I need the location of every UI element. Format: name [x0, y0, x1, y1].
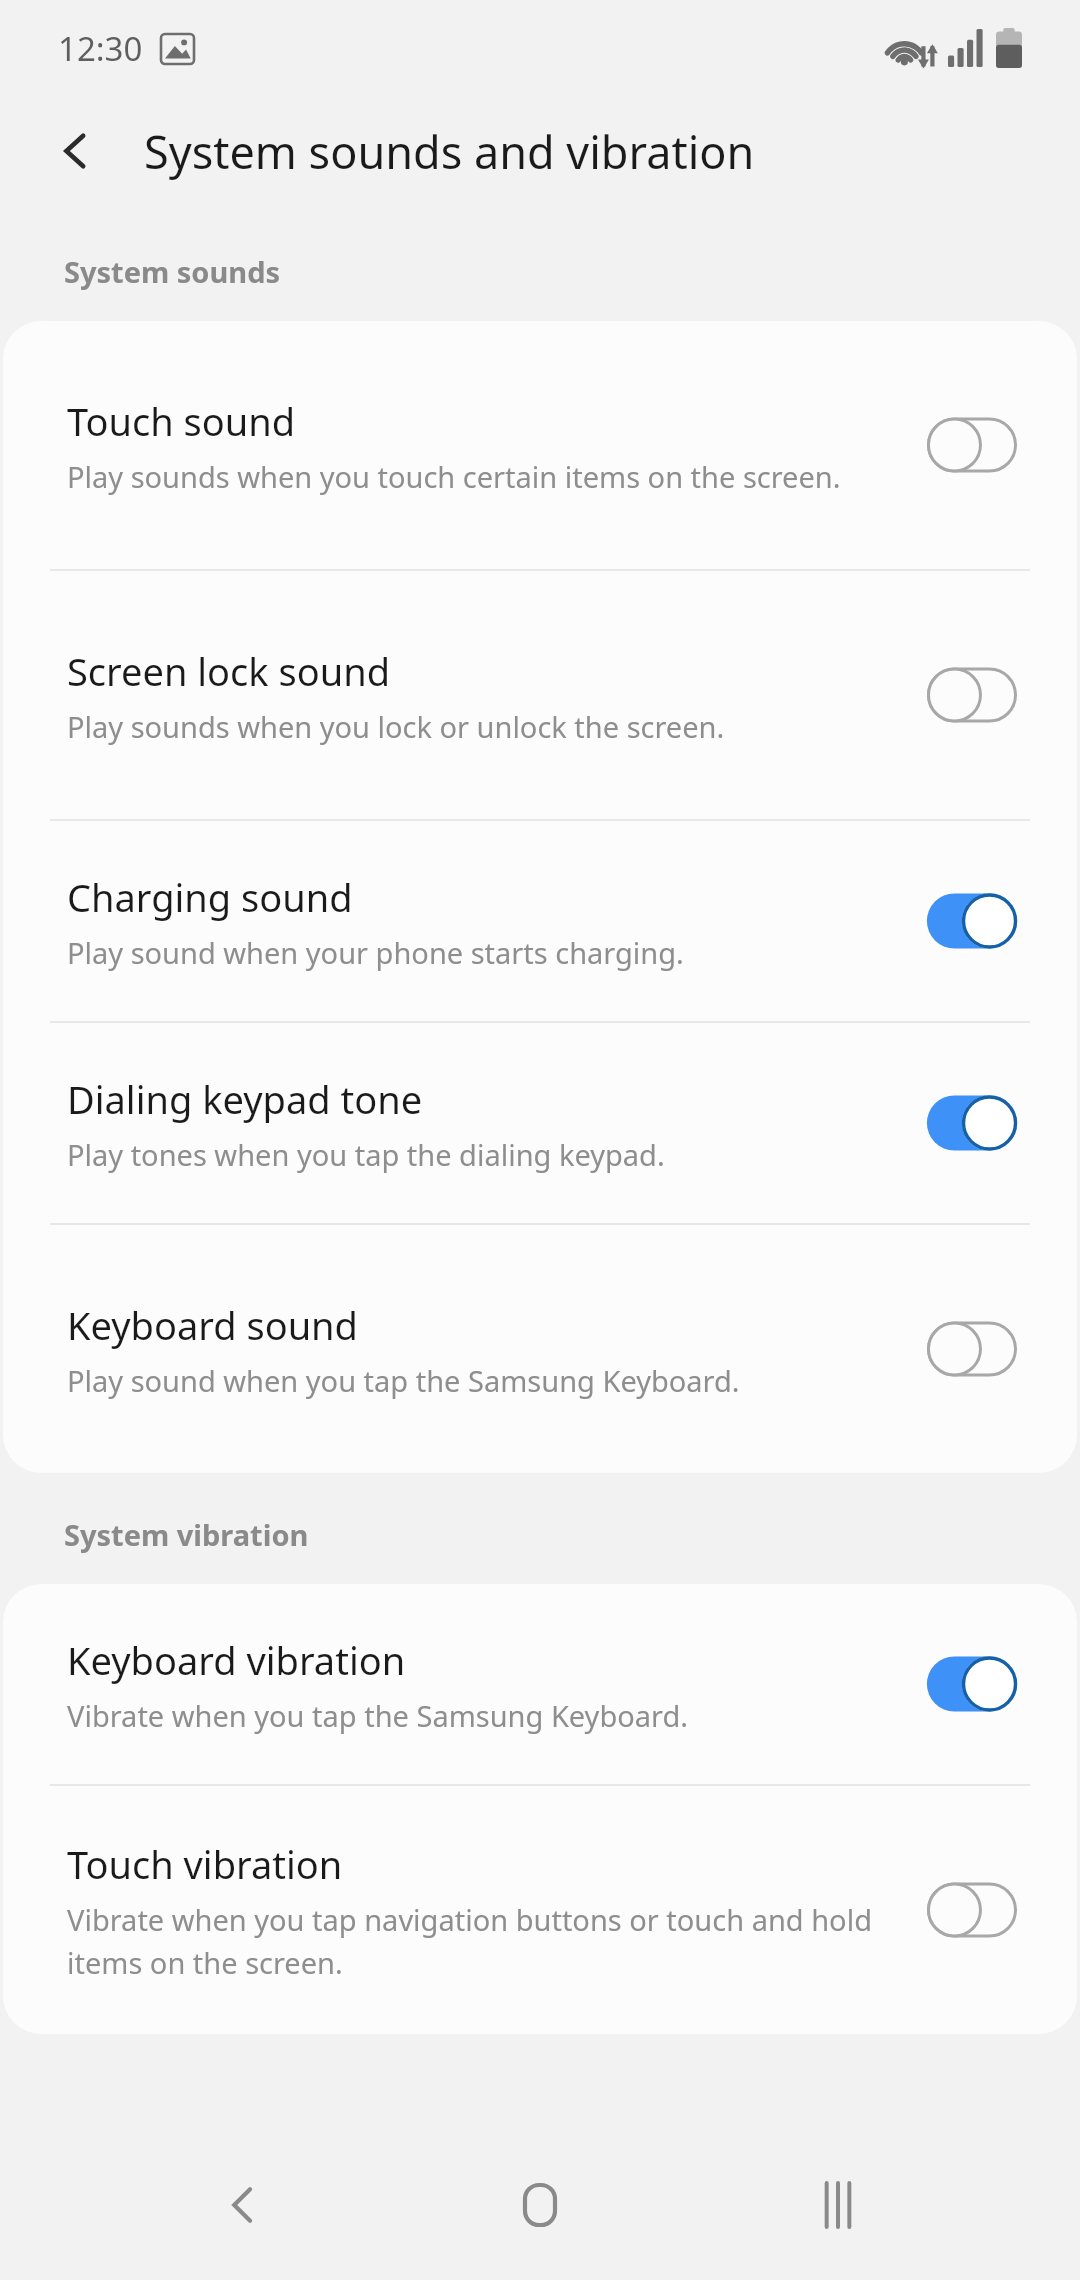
button[interactable]: Keyboard sound: [3, 1225, 1077, 1473]
staticText: Play sound when you tap the Samsung Keyb…: [67, 1361, 740, 1400]
staticText: Screen lock sound: [67, 645, 391, 697]
button[interactable]: Off: [925, 1319, 1019, 1379]
button[interactable]: On: [925, 1654, 1019, 1714]
button[interactable]: Recent apps: [783, 2150, 893, 2260]
button[interactable]: Off: [925, 415, 1019, 475]
button[interactable]: Off: [925, 665, 1019, 725]
button[interactable]: Keyboard vibration: [3, 1584, 1077, 1784]
staticText: Touch vibration: [67, 1838, 343, 1890]
staticText: Charging sound: [67, 871, 353, 923]
staticText: Play tones when you tap the dialing keyp…: [67, 1135, 665, 1174]
staticText: System sounds: [64, 252, 281, 291]
button[interactable]: Touch vibration: [3, 1786, 1077, 2034]
button[interactable]: On: [925, 891, 1019, 951]
staticText: Dialing keypad tone: [67, 1073, 423, 1125]
staticText: 12:30: [58, 26, 143, 71]
button[interactable]: Touch sound: [3, 321, 1077, 569]
staticText: Keyboard vibration: [67, 1634, 406, 1686]
button[interactable]: On: [925, 1093, 1019, 1153]
staticText: Vibrate when you tap navigation buttons …: [67, 1900, 901, 1982]
button[interactable]: Off: [925, 1880, 1019, 1940]
button[interactable]: Back: [34, 109, 118, 193]
button[interactable]: Screen lock sound: [3, 571, 1077, 819]
staticText: Touch sound: [67, 395, 296, 447]
button[interactable]: Dialing keypad tone: [3, 1023, 1077, 1223]
button[interactable]: Charging sound: [3, 821, 1077, 1021]
staticText: System sounds and vibration: [144, 121, 755, 182]
button[interactable]: Home: [485, 2150, 595, 2260]
button[interactable]: Back: [188, 2150, 298, 2260]
staticText: Play sound when your phone starts chargi…: [67, 933, 684, 972]
staticText: Vibrate when you tap the Samsung Keyboar…: [67, 1696, 689, 1735]
staticText: Play sounds when you touch certain items…: [67, 457, 841, 496]
staticText: Play sounds when you lock or unlock the …: [67, 707, 725, 746]
staticText: System vibration: [64, 1515, 309, 1554]
staticText: Keyboard sound: [67, 1299, 358, 1351]
